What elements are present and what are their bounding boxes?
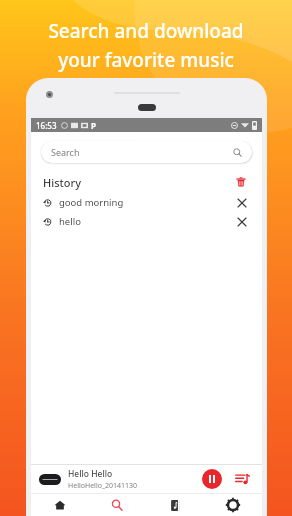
staticText: History — [43, 175, 81, 190]
staticText: Hello Hello — [68, 468, 113, 480]
button[interactable]: Remove hello — [235, 215, 249, 229]
staticText: Search — [51, 146, 80, 158]
staticText: P — [91, 120, 96, 131]
button[interactable]: good morning — [31, 193, 262, 212]
button[interactable]: Home — [31, 494, 88, 516]
staticText: good morning — [59, 196, 124, 209]
button[interactable]: Settings — [204, 494, 262, 516]
staticText: hello — [59, 215, 81, 228]
staticText: HelloHello_20141130 — [68, 481, 138, 491]
button[interactable]: Playlist — [232, 469, 252, 489]
button[interactable]: Search — [41, 141, 252, 163]
staticText: 16:53 — [36, 120, 57, 131]
button[interactable]: Search — [88, 494, 146, 516]
staticText: Search and download — [48, 18, 244, 44]
button[interactable]: Library — [146, 494, 204, 516]
button[interactable]: hello — [31, 212, 262, 231]
button[interactable]: Clear history — [233, 174, 249, 190]
button[interactable]: Remove good morning — [235, 196, 249, 210]
staticText: your favorite music — [58, 47, 234, 73]
button[interactable]: Pause — [202, 469, 222, 489]
